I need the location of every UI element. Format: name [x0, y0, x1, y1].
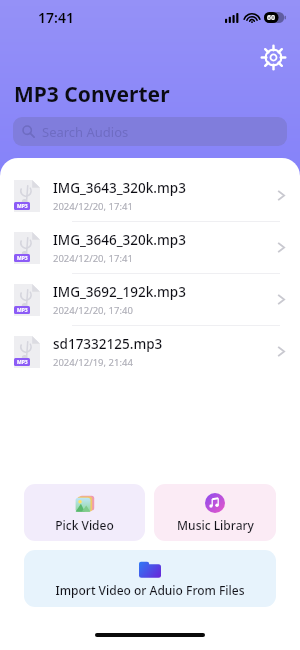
staticText: Pick Video	[55, 517, 114, 533]
staticText: MP3 Converter	[14, 80, 170, 109]
staticText: 17:41	[38, 8, 74, 27]
staticText: MP3	[17, 307, 28, 314]
button[interactable]: Import Video or Aduio From Files	[24, 550, 276, 607]
staticText: 2024/12/20, 17:41	[53, 252, 133, 265]
button[interactable]: Pick Video	[24, 484, 145, 541]
staticText: IMG_3646_320k.mp3	[53, 231, 186, 249]
staticText: 60	[267, 13, 276, 23]
button[interactable]: Search Audios	[13, 117, 287, 146]
staticText: 2024/12/20, 17:41	[53, 200, 133, 213]
staticText: sd17332125.mp3	[53, 335, 163, 353]
staticText: IMG_3692_192k.mp3	[53, 283, 186, 301]
staticText: MP3	[17, 203, 28, 210]
staticText: MP3	[17, 359, 28, 366]
staticText: Search Audios	[42, 123, 129, 141]
button[interactable]: MP3	[0, 222, 300, 274]
button[interactable]: MP3	[0, 170, 300, 222]
staticText: 2024/12/19, 21:44	[53, 356, 133, 369]
button[interactable]: MP3	[0, 326, 300, 377]
staticText: 2024/12/20, 17:40	[53, 304, 133, 317]
button[interactable]: Settings	[257, 41, 289, 73]
button[interactable]: MP3	[0, 274, 300, 326]
staticText: Import Video or Aduio From Files	[55, 582, 245, 598]
staticText: IMG_3643_320k.mp3	[53, 179, 186, 197]
button[interactable]: Music Library	[154, 484, 276, 541]
staticText: MP3	[17, 255, 28, 262]
staticText: Music Library	[177, 517, 254, 533]
